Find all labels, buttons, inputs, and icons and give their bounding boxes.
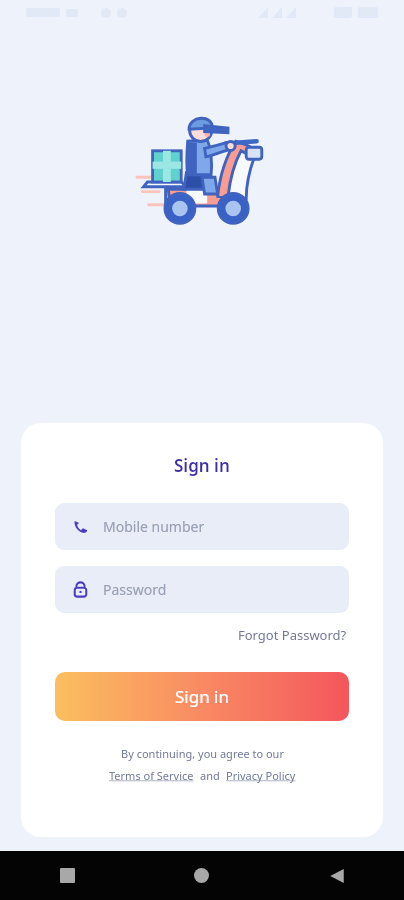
button[interactable]: Forgot Password? [236, 623, 349, 647]
button[interactable]: Back [269, 851, 404, 900]
staticText: Forgot Password? [238, 626, 347, 644]
button[interactable]: Mobile number [55, 503, 349, 550]
staticText: Terms of Service [109, 768, 194, 783]
button[interactable]: Terms of Service [108, 766, 195, 785]
staticText: Sign in [174, 454, 230, 477]
staticText: Mobile number [103, 517, 205, 536]
button[interactable]: Home [134, 851, 269, 900]
staticText: Privacy Policy [226, 768, 296, 783]
staticText: Sign in [175, 685, 229, 708]
staticText: and [200, 768, 220, 783]
button[interactable]: Privacy Policy [225, 766, 297, 785]
button[interactable]: Sign in [55, 672, 349, 721]
staticText: Password [103, 580, 167, 599]
button[interactable]: Password [55, 566, 349, 613]
staticText: By continuing, you agree to our [121, 746, 284, 761]
button[interactable]: Recent apps [0, 851, 134, 900]
